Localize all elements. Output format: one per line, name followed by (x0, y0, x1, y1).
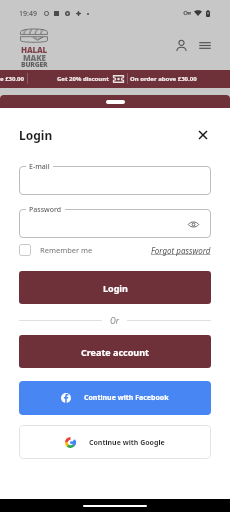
staticText: Password (29, 205, 62, 215)
button[interactable]: Create account (19, 335, 211, 368)
staticText: On order above £30.00 (130, 75, 197, 83)
button[interactable]: Continue with Google (19, 425, 211, 459)
staticText: Login (103, 282, 128, 294)
staticText: Create account (81, 346, 149, 358)
staticText: Remember me (40, 245, 93, 255)
staticText: Get 20% discount (57, 75, 109, 83)
button[interactable]: Show password (187, 218, 199, 230)
button[interactable]: Login (19, 271, 211, 304)
button[interactable]: Forgot password (151, 245, 211, 256)
staticText: MAKE (23, 52, 46, 63)
staticText: E-mail (29, 162, 50, 172)
staticText: Or (110, 315, 119, 326)
button[interactable]: Continue with Facebook (19, 381, 211, 415)
staticText: Continue with Facebook (84, 393, 169, 403)
staticText: HALAL (21, 44, 48, 55)
button[interactable]: Menu (194, 34, 216, 56)
button[interactable] (19, 209, 211, 238)
staticText: 19:49 (19, 9, 37, 19)
staticText: BURGER (21, 60, 48, 69)
staticText: Login (19, 127, 53, 143)
button[interactable]: Account (170, 34, 192, 56)
button[interactable]: Remember me (19, 244, 93, 256)
button[interactable] (19, 166, 211, 195)
staticText: e £30.00 (0, 75, 24, 83)
staticText: Continue with Google (89, 438, 165, 448)
button[interactable]: Close (195, 127, 211, 143)
